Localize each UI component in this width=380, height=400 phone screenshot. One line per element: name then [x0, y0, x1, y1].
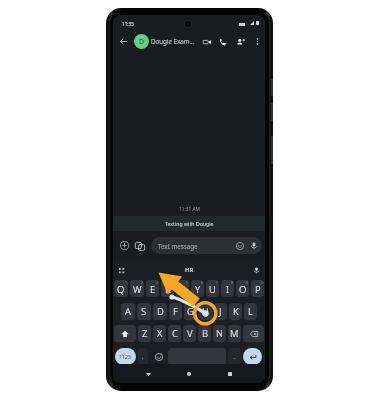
button[interactable]: Z — [138, 325, 151, 342]
staticText: F — [173, 305, 178, 318]
button[interactable]: M — [228, 325, 241, 342]
button[interactable]: Gallery — [133, 239, 146, 252]
button[interactable]: G — [184, 303, 197, 320]
staticText: X — [157, 327, 163, 340]
staticText: M — [230, 327, 239, 340]
staticText: B — [202, 327, 208, 340]
staticText: Texting with Dougie — [165, 220, 214, 227]
staticText: 11:31 AM — [179, 206, 200, 213]
button[interactable]: T — [176, 280, 189, 297]
staticText: Q — [117, 283, 125, 296]
button[interactable]: U — [206, 280, 219, 297]
button[interactable]: W — [130, 280, 144, 297]
staticText: J — [219, 305, 222, 318]
staticText: 9 — [246, 280, 248, 285]
staticText: K — [233, 305, 239, 318]
button[interactable]: Back — [141, 367, 155, 381]
staticText: S — [141, 305, 147, 318]
button[interactable]: C — [168, 325, 181, 342]
button[interactable]: F — [169, 303, 182, 320]
staticText: D — [139, 37, 145, 47]
staticText: Y — [195, 283, 201, 296]
staticText: E — [150, 283, 156, 296]
staticText: V — [187, 327, 193, 340]
staticText: R — [165, 283, 171, 296]
staticText: L — [248, 305, 253, 318]
staticText: 2 — [141, 280, 143, 285]
button[interactable]: Call — [216, 35, 229, 48]
staticText: 6 — [201, 280, 203, 285]
button[interactable]: More options — [251, 35, 264, 48]
staticText: 7 — [216, 280, 218, 285]
staticText: ?123 — [119, 353, 132, 361]
button[interactable]: D — [153, 303, 167, 320]
button[interactable]: Emoji — [151, 348, 166, 365]
staticText: Text message — [158, 242, 198, 250]
staticText: , — [142, 353, 144, 361]
button[interactable]: N — [213, 325, 226, 342]
staticText: H — [202, 305, 209, 318]
button[interactable]: , — [138, 348, 148, 365]
button[interactable]: Video call — [200, 35, 213, 48]
button[interactable]: X — [153, 325, 166, 342]
button[interactable]: Recents — [223, 367, 237, 381]
staticText: U — [209, 283, 216, 296]
button[interactable]: Attach — [118, 239, 131, 252]
button[interactable]: Back — [117, 35, 130, 48]
staticText: P — [255, 283, 261, 296]
button[interactable]: H — [199, 303, 212, 320]
staticText: A — [125, 305, 131, 318]
button[interactable]: O — [236, 280, 249, 297]
button[interactable]: Add person — [234, 35, 247, 48]
staticText: G — [187, 305, 194, 318]
staticText: N — [216, 327, 223, 340]
staticText: 11:35 — [122, 21, 134, 27]
button[interactable]: Voice input — [251, 265, 262, 276]
button[interactable]: Enter — [243, 348, 262, 365]
staticText: HR — [185, 266, 194, 274]
button[interactable]: Home — [182, 367, 196, 381]
staticText: 3 — [156, 280, 158, 285]
button[interactable]: I — [221, 280, 234, 297]
button[interactable]: A — [121, 303, 135, 320]
staticText: 5 — [186, 280, 188, 285]
staticText: 1 — [125, 280, 127, 285]
button[interactable]: . — [228, 348, 241, 365]
staticText: D — [157, 305, 164, 318]
staticText: T — [180, 283, 186, 296]
button[interactable]: Q — [114, 280, 128, 297]
staticText: Dougie Exam... — [151, 37, 195, 46]
button[interactable]: R — [161, 280, 174, 297]
button[interactable]: ?123 — [115, 348, 136, 365]
staticText: Z — [142, 327, 148, 340]
staticText: 8 — [231, 280, 233, 285]
button[interactable]: P — [251, 280, 264, 297]
staticText: C — [172, 327, 178, 340]
button[interactable]: Space — [168, 348, 226, 365]
button[interactable]: S — [137, 303, 151, 320]
button[interactable]: Y — [191, 280, 204, 297]
button[interactable]: Text message — [151, 237, 262, 254]
staticText: I — [226, 283, 229, 296]
button[interactable]: J — [214, 303, 227, 320]
button[interactable]: Shift — [114, 325, 136, 342]
button[interactable]: K — [229, 303, 242, 320]
staticText: O — [239, 283, 247, 296]
button[interactable]: B — [198, 325, 211, 342]
staticText: . — [234, 353, 236, 361]
button[interactable]: E — [146, 280, 159, 297]
button[interactable]: V — [183, 325, 196, 342]
button[interactable]: Backspace — [243, 325, 264, 342]
button[interactable]: L — [244, 303, 257, 320]
staticText: 0 — [261, 280, 263, 285]
staticText: W — [133, 283, 142, 296]
button[interactable]: Keyboard modes — [116, 265, 127, 276]
